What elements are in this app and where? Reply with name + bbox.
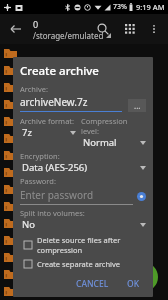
button[interactable] bbox=[0, 180, 168, 197]
staticText: ... bbox=[134, 100, 141, 111]
button[interactable] bbox=[0, 61, 168, 78]
button[interactable] bbox=[0, 197, 168, 214]
staticText: darly bbox=[23, 251, 45, 263]
staticText: 73% bbox=[113, 2, 127, 12]
staticText: Split into volumes: bbox=[20, 208, 85, 218]
button[interactable]: OK bbox=[121, 275, 146, 293]
button[interactable]: Back bbox=[4, 17, 28, 41]
button[interactable]: bluetooth bbox=[0, 265, 168, 282]
button[interactable]: More options bbox=[144, 19, 164, 39]
staticText: Create archive bbox=[20, 63, 99, 79]
staticText: 7z bbox=[22, 126, 32, 139]
button[interactable]: Browse bbox=[128, 99, 146, 112]
staticText: Encryption: bbox=[20, 151, 60, 161]
button[interactable] bbox=[0, 163, 168, 180]
staticText: 9:19 AM bbox=[136, 2, 165, 12]
staticText: bluetooth bbox=[23, 268, 65, 280]
staticText: 0 bbox=[33, 18, 39, 30]
staticText: Create separate archive bbox=[37, 259, 121, 269]
button[interactable]: Grid view bbox=[119, 18, 141, 40]
staticText: Data (AES-256) bbox=[22, 161, 88, 174]
button[interactable]: Search bbox=[92, 18, 114, 40]
button[interactable]: No bbox=[20, 218, 146, 231]
button[interactable]: archiveNew.7z bbox=[20, 95, 122, 112]
button[interactable]: Enter password bbox=[20, 188, 146, 205]
button[interactable] bbox=[0, 146, 168, 163]
staticText: CANCEL bbox=[76, 278, 109, 290]
button[interactable] bbox=[0, 231, 168, 248]
button[interactable]: 7z bbox=[20, 126, 76, 139]
staticText: Archive: bbox=[20, 84, 48, 94]
button[interactable]: CANCEL bbox=[70, 275, 115, 293]
staticText: OK bbox=[127, 278, 140, 290]
button[interactable] bbox=[0, 129, 168, 146]
staticText: Password: bbox=[20, 176, 56, 186]
staticText: Delete source files after compression bbox=[37, 235, 146, 255]
staticText: /storage/emulated bbox=[33, 30, 104, 41]
staticText: archiveNew.7z bbox=[20, 95, 88, 109]
button[interactable]: Delete source files after compression bbox=[20, 235, 146, 255]
staticText: Compression level: bbox=[81, 116, 146, 136]
button[interactable] bbox=[0, 78, 168, 95]
button[interactable]: Normal bbox=[81, 136, 146, 149]
staticText: No bbox=[22, 218, 35, 231]
button[interactable]: Add bbox=[128, 262, 158, 292]
staticText: Enter password bbox=[20, 188, 94, 202]
staticText: Archive format: bbox=[20, 116, 75, 126]
button[interactable] bbox=[0, 112, 168, 129]
button[interactable] bbox=[0, 44, 168, 61]
button[interactable]: Data (AES-256) bbox=[20, 161, 146, 174]
button[interactable] bbox=[0, 282, 168, 299]
staticText: Normal bbox=[83, 136, 117, 149]
button[interactable] bbox=[0, 95, 168, 112]
button[interactable]: Create separate archive bbox=[20, 259, 146, 269]
button[interactable]: darly bbox=[0, 248, 168, 265]
button[interactable] bbox=[0, 214, 168, 231]
